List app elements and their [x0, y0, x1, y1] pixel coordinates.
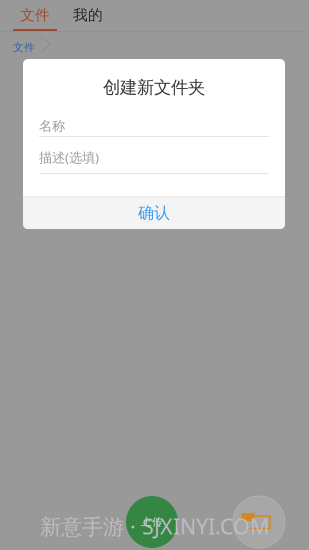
button[interactable]: 我的 — [66, 0, 110, 31]
staticText: 上传 — [141, 515, 163, 528]
button[interactable]: 确认 — [23, 197, 285, 229]
staticText: 描述(选填) — [39, 148, 99, 166]
staticText: 文件 — [20, 6, 50, 24]
staticText: 确认 — [138, 203, 170, 223]
button[interactable]: 上传 — [126, 496, 178, 548]
staticText: 创建新文件夹 — [103, 77, 205, 98]
button[interactable]: 文件 — [0, 32, 40, 54]
staticText: 我的 — [73, 6, 103, 24]
button[interactable]: 文件 — [13, 0, 57, 31]
staticText: 新意手游 · SJXINYI.COM — [40, 512, 269, 540]
staticText: 名称 — [39, 118, 65, 134]
button[interactable]: New folder — [233, 496, 285, 548]
staticText: 文件 — [13, 41, 35, 54]
